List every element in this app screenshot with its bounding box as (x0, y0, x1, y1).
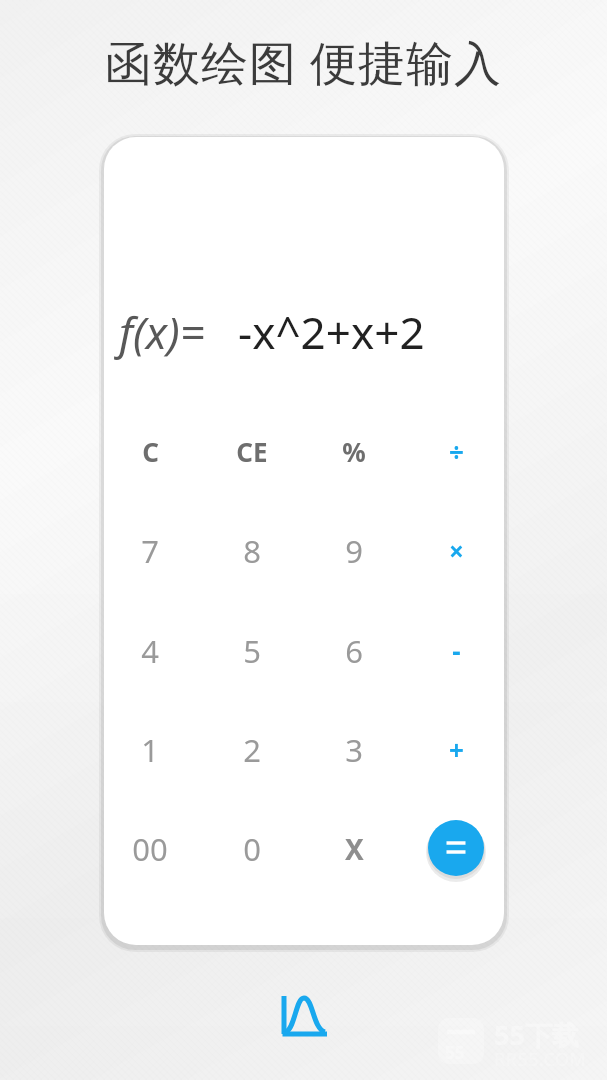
staticText: 6 (345, 630, 363, 672)
button[interactable]: 1 (104, 700, 201, 799)
staticText: + (449, 732, 464, 767)
staticText: 函数绘图 便捷输入 (0, 30, 607, 94)
button[interactable]: 6 (303, 601, 405, 700)
button[interactable]: × (405, 501, 504, 600)
button[interactable]: + (405, 700, 504, 799)
button[interactable]: 7 (104, 501, 201, 600)
button[interactable]: 2 (201, 700, 303, 799)
staticText: 9 (345, 530, 363, 572)
staticText: 5 (243, 630, 261, 672)
button[interactable]: 4 (104, 601, 201, 700)
staticText: -x^2+x+2 (238, 302, 425, 362)
staticText: 0 (243, 828, 261, 870)
staticText: ÷ (449, 434, 464, 469)
staticText: 2 (243, 729, 261, 771)
staticText: 4 (141, 630, 159, 672)
button[interactable]: 00 (104, 799, 201, 898)
staticText: X (345, 830, 364, 868)
staticText: 8 (243, 530, 261, 572)
button[interactable]: X (303, 799, 405, 898)
button[interactable]: 3 (303, 700, 405, 799)
button[interactable]: % (303, 402, 405, 501)
button[interactable]: CE (201, 402, 303, 501)
staticText: CE (236, 434, 268, 469)
button[interactable]: f(x)= (104, 287, 504, 377)
staticText: 3 (345, 729, 363, 771)
staticText: × (449, 533, 464, 568)
button[interactable]: C (104, 402, 201, 501)
button[interactable]: 9 (303, 501, 405, 600)
staticText: f(x)= (119, 302, 205, 362)
button[interactable]: Plot graph (277, 988, 331, 1042)
button[interactable]: ÷ (405, 402, 504, 501)
staticText: C (142, 434, 159, 469)
staticText: 7 (141, 530, 159, 572)
button[interactable]: 8 (201, 501, 303, 600)
staticText: % (342, 434, 366, 469)
staticText: 1 (141, 729, 159, 771)
button[interactable]: 0 (201, 799, 303, 898)
staticText: 00 (132, 828, 168, 870)
staticText: - (452, 633, 461, 668)
button[interactable]: 5 (201, 601, 303, 700)
button[interactable]: - (405, 601, 504, 700)
button[interactable]: Equals (422, 814, 490, 882)
